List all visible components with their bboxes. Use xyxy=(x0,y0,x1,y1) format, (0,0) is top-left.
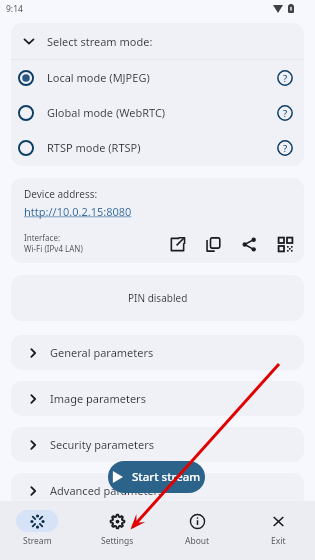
staticText: Settings xyxy=(101,535,134,547)
button[interactable]: Image parameters xyxy=(11,381,304,416)
button[interactable]: About xyxy=(161,501,233,560)
staticText: Wi-Fi (IPv4 LAN) xyxy=(24,243,83,254)
button[interactable]: Help about RTSP mode (RTSP) xyxy=(269,132,301,164)
button[interactable]: Share xyxy=(231,227,267,261)
staticText: Stream xyxy=(23,535,52,547)
staticText: 9:14 xyxy=(6,3,23,15)
staticText: Advanced parameters xyxy=(50,483,164,498)
staticText: ? xyxy=(283,107,288,120)
button[interactable]: Local mode (MJPEG) xyxy=(11,60,304,95)
staticText: ? xyxy=(283,142,288,155)
button[interactable]: General parameters xyxy=(11,335,304,370)
staticText: RTSP mode (RTSP) xyxy=(47,140,141,155)
button[interactable]: Security parameters xyxy=(11,427,304,462)
staticText: Local mode (MJPEG) xyxy=(47,70,150,85)
button[interactable]: Select stream mode: xyxy=(11,23,304,59)
button[interactable]: Advanced parameters xyxy=(11,473,304,508)
staticText: Select stream mode: xyxy=(47,34,153,49)
button[interactable]: Open in browser xyxy=(159,227,195,261)
staticText: About xyxy=(185,535,210,547)
staticText: Start stream xyxy=(132,469,201,485)
button[interactable]: Start stream xyxy=(108,461,205,493)
button[interactable]: Exit xyxy=(242,501,314,560)
staticText: General parameters xyxy=(50,345,154,360)
staticText: Global mode (WebRTC) xyxy=(47,105,166,120)
button[interactable]: Help about Global mode (WebRTC) xyxy=(269,97,301,129)
button[interactable]: Global mode (WebRTC) xyxy=(11,95,304,130)
staticText: Interface: xyxy=(24,232,61,243)
button[interactable]: Copy address xyxy=(195,227,231,261)
staticText: Device address: xyxy=(24,187,98,201)
staticText: Image parameters xyxy=(50,391,146,406)
staticText: Security parameters xyxy=(50,437,155,452)
button[interactable]: Stream xyxy=(1,501,73,560)
staticText: ? xyxy=(283,72,288,85)
staticText: Exit xyxy=(271,535,286,547)
button[interactable]: Settings xyxy=(81,501,153,560)
button[interactable]: http://10.0.2.15:8080 xyxy=(24,204,132,219)
staticText: PIN disabled xyxy=(128,291,188,305)
button[interactable]: RTSP mode (RTSP) xyxy=(11,130,304,165)
button[interactable]: PIN disabled xyxy=(11,275,304,321)
button[interactable]: Show QR code xyxy=(267,227,303,261)
button[interactable]: Help about Local mode (MJPEG) xyxy=(269,62,301,94)
